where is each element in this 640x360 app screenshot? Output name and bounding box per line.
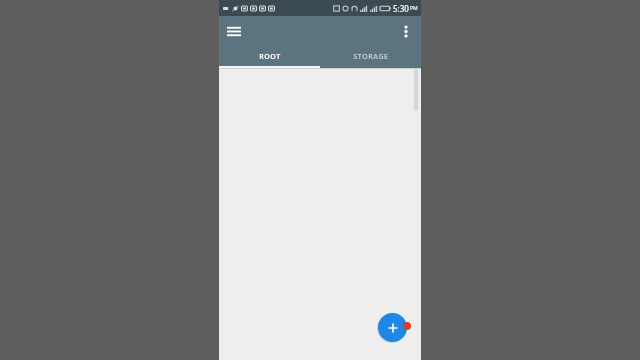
staticText: PM — [410, 5, 418, 12]
button[interactable]: ROOT — [219, 45, 320, 68]
button[interactable]: Add — [378, 313, 407, 342]
staticText: STORAGE — [353, 52, 389, 62]
staticText: 5:30 — [393, 3, 409, 14]
button[interactable]: Open navigation drawer — [222, 19, 246, 43]
staticText: ROOT — [259, 52, 281, 62]
button[interactable]: STORAGE — [320, 45, 421, 68]
button[interactable]: More options — [394, 19, 418, 43]
